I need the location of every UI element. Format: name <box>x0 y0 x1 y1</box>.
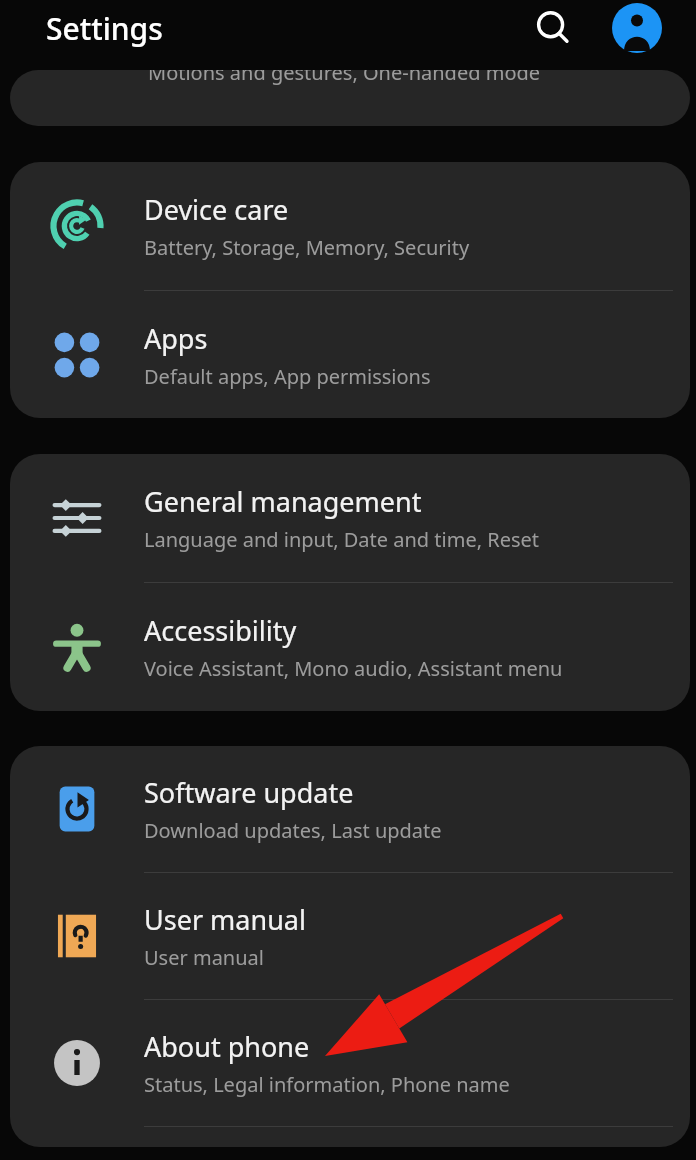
staticText: General management <box>144 483 422 520</box>
staticText: Default apps, App permissions <box>144 363 431 390</box>
staticText: Voice Assistant, Mono audio, Assistant m… <box>144 655 563 682</box>
staticText: Language and input, Date and time, Reset <box>144 526 540 553</box>
staticText: Download updates, Last update <box>144 817 442 844</box>
staticText: Device care <box>144 191 289 228</box>
staticText: Accessibility <box>144 612 297 649</box>
staticText: Software update <box>144 774 354 811</box>
staticText: About phone <box>144 1028 310 1065</box>
button[interactable]: Apps <box>10 291 690 418</box>
button[interactable]: Motions and gestures, One-handed mode <box>10 70 690 126</box>
staticText: User manual <box>144 901 306 938</box>
button[interactable]: Account <box>607 0 667 56</box>
button[interactable]: Accessibility <box>10 583 690 711</box>
staticText: User manual <box>144 944 264 971</box>
button[interactable]: General management <box>10 454 690 582</box>
staticText: Apps <box>144 320 208 357</box>
staticText: Battery, Storage, Memory, Security <box>144 234 470 261</box>
button[interactable]: Device care <box>10 162 690 290</box>
button[interactable]: Software update <box>10 746 690 872</box>
staticText: Motions and gestures, One-handed mode <box>148 70 541 86</box>
button[interactable]: About phone <box>10 1000 690 1126</box>
staticText: Settings <box>46 8 163 49</box>
button[interactable]: Search <box>523 0 583 56</box>
staticText: Status, Legal information, Phone name <box>144 1071 510 1098</box>
button[interactable]: User manual <box>10 873 690 999</box>
